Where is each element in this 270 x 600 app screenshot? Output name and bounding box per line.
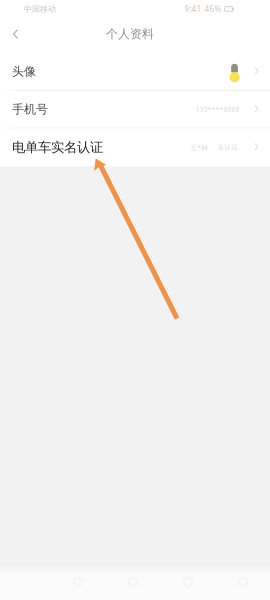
staticText: 王*丽 [191, 143, 209, 152]
button[interactable]: 头像 [0, 46, 270, 90]
staticText: 46% [205, 4, 222, 14]
staticText: 去认证 [218, 143, 239, 151]
staticText: 9:41 [185, 4, 202, 14]
button[interactable]: 手机号 [0, 91, 270, 128]
staticText: 135****8888 [196, 105, 240, 114]
staticText: 手机号 [12, 102, 48, 116]
button[interactable]: Back [0, 22, 40, 46]
button[interactable]: Discover [128, 577, 138, 587]
staticText: 头像 [12, 64, 36, 79]
staticText: 中国移动 [24, 4, 56, 14]
button[interactable]: Profile [238, 577, 248, 587]
staticText: 个人资料 [106, 27, 154, 41]
staticText: 电单车实名认证 [12, 139, 103, 156]
button[interactable]: Home [73, 577, 83, 587]
button[interactable]: Messages [183, 577, 193, 587]
button[interactable]: 电单车实名认证 [0, 128, 270, 166]
